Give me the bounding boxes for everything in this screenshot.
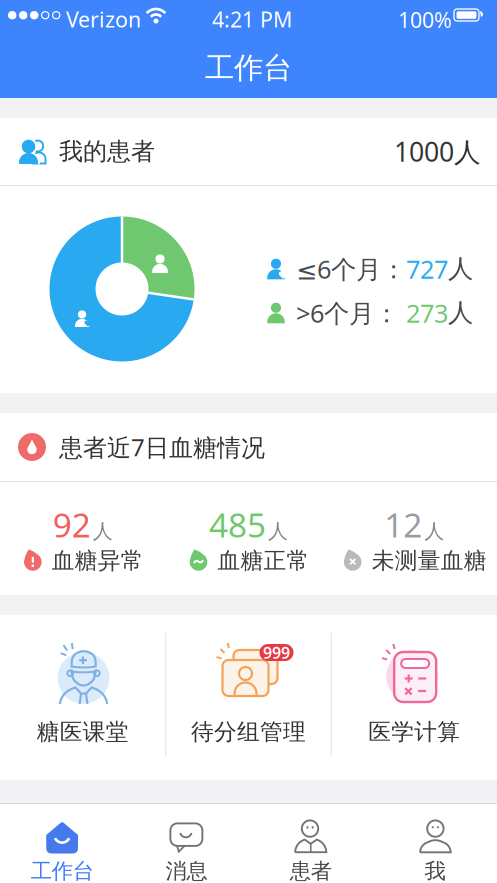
button[interactable]: 患者 <box>248 821 373 883</box>
staticText: 未测量血糖 <box>372 547 487 574</box>
staticText: 人 <box>448 253 473 284</box>
staticText: 我 <box>424 858 445 883</box>
staticText: 92 <box>53 502 91 547</box>
staticText: 工作台 <box>31 858 94 883</box>
staticText: 患者 <box>290 858 332 883</box>
staticText: >6个月： <box>296 296 399 330</box>
button[interactable]: 消息 <box>124 821 248 883</box>
staticText: 485 <box>209 502 266 547</box>
staticText: 273 <box>399 296 448 330</box>
staticText: 12 <box>384 502 422 547</box>
button[interactable]: 工作台 <box>0 821 124 883</box>
button[interactable]: 糖医课堂 <box>0 636 166 746</box>
staticText: 工作台 <box>205 50 292 86</box>
staticText: ≤6个月： <box>296 252 406 286</box>
staticText: 我的患者 <box>59 137 155 166</box>
button[interactable]: 999 <box>166 636 331 746</box>
staticText: 100% <box>398 5 452 34</box>
staticText: 糖医课堂 <box>37 718 129 746</box>
button[interactable]: 我的患者 <box>0 118 497 185</box>
staticText: 999 <box>263 642 290 663</box>
staticText: 人 <box>93 519 113 544</box>
staticText: 人 <box>268 519 288 544</box>
button[interactable]: 医学计算 <box>331 636 497 746</box>
staticText: 人 <box>424 519 444 544</box>
staticText: 人 <box>448 297 473 328</box>
staticText: 消息 <box>165 858 207 883</box>
staticText: Verizon <box>66 5 141 33</box>
staticText: 待分组管理 <box>191 718 306 746</box>
staticText: 血糖正常 <box>217 547 309 574</box>
staticText: 727 <box>406 252 448 286</box>
staticText: 1000人 <box>394 134 481 169</box>
staticText: 医学计算 <box>368 718 460 746</box>
staticText: 4:21 PM <box>212 5 292 33</box>
staticText: 血糖异常 <box>52 547 144 574</box>
staticText: 患者近7日血糖情况 <box>59 431 265 463</box>
button[interactable]: 我 <box>373 821 497 883</box>
